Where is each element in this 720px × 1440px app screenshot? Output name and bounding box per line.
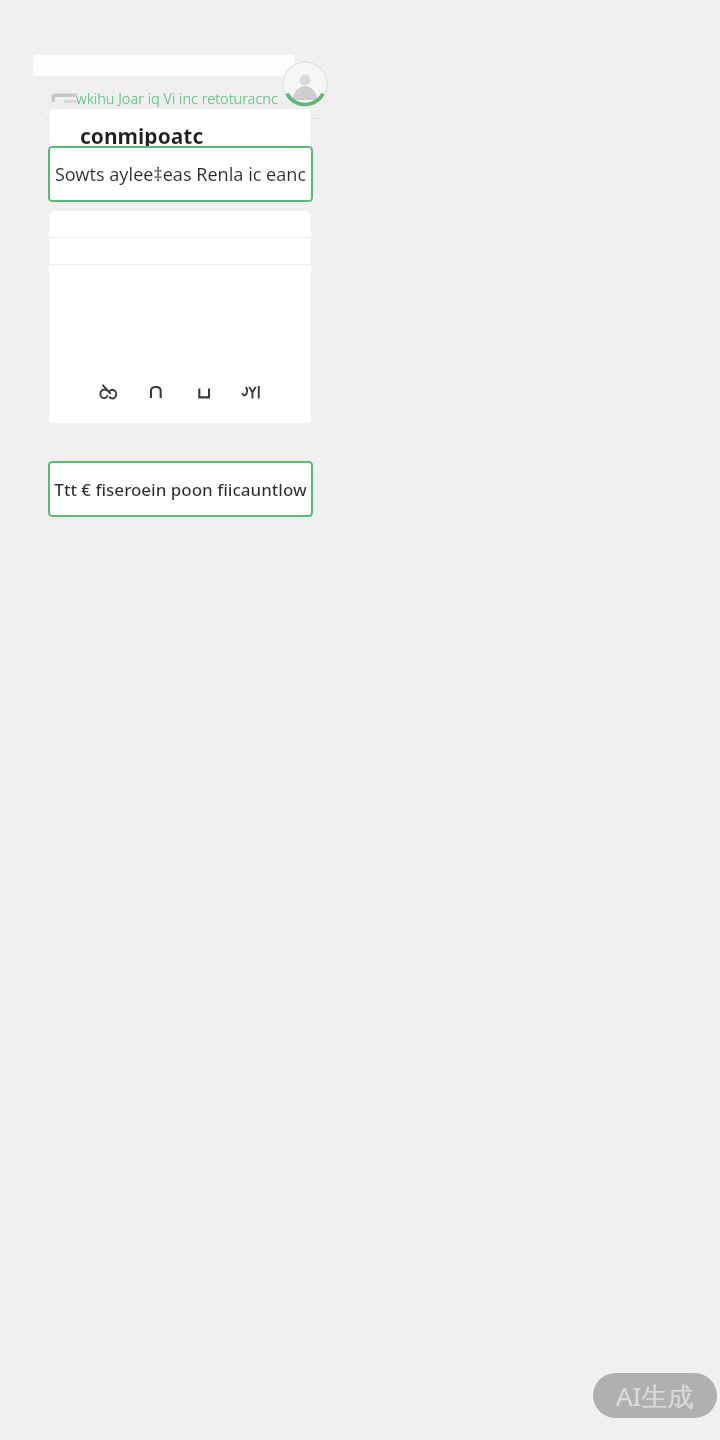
button[interactable]: conmipoatc Infunmmniaona. xyxy=(49,109,311,192)
button[interactable]: Profile xyxy=(283,62,327,106)
staticText: wkihu Joar iq Vi inc retoturacnc cuie. xyxy=(76,88,288,108)
button[interactable]: Sowts aylee‡eas Renla ic eanc an xyxy=(48,146,313,202)
button[interactable]: Ttt € fiseroein poon fiicauntlow trok oi… xyxy=(48,461,313,517)
staticText: Sowts aylee‡eas Renla ic eanc an xyxy=(48,162,313,187)
button[interactable]: Item 1 xyxy=(49,211,311,423)
button[interactable]: Item 4 xyxy=(235,376,267,408)
button[interactable]: Item 1 xyxy=(93,376,125,408)
button[interactable]: wkihu Joar iq Vi inc retoturacnc cuie. xyxy=(76,78,288,118)
staticText: conmipoatc Infunmmniaona. xyxy=(80,122,311,151)
staticText: AI生成 xyxy=(616,1378,694,1414)
staticText: Ttt € fiseroein poon fiicauntlow trok oi… xyxy=(48,478,313,501)
button[interactable]: Item 2 xyxy=(140,376,172,408)
button[interactable]: Back xyxy=(48,86,82,110)
button[interactable]: Item 3 xyxy=(188,376,220,408)
